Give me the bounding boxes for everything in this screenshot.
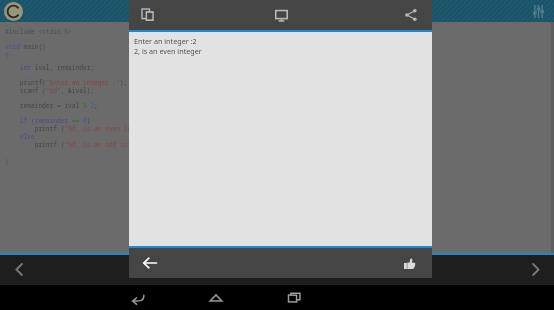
staticText: else (5, 132, 35, 140)
staticText: printf ("%d, is an odd integer", ival); (5, 140, 180, 148)
staticText: void main() (5, 42, 46, 50)
button[interactable]: Previous (6, 256, 32, 282)
staticText: remainder = ival % 2; (5, 101, 98, 109)
staticText: scanf ("%d", &ival); (5, 86, 95, 94)
button[interactable]: Settings (528, 1, 548, 21)
button[interactable]: Copy output (135, 2, 161, 28)
button[interactable]: Display output (268, 2, 294, 28)
button[interactable]: Share (398, 2, 424, 28)
staticText: Enter an integer :2 (134, 36, 197, 46)
button[interactable]: Recent apps (276, 285, 312, 310)
button[interactable]: Next (522, 256, 548, 282)
staticText: printf("Enter an integer :"); (5, 78, 128, 86)
staticText: int ival, remainder; (5, 63, 95, 71)
button[interactable]: C compiler app icon (4, 2, 23, 21)
button[interactable]: Like (396, 250, 422, 276)
button[interactable]: Back (120, 285, 156, 310)
staticText: #include <stdio.h> (5, 27, 72, 35)
staticText: printf ("%d, is an even integer", ival); (5, 124, 184, 132)
button[interactable]: Home (198, 285, 234, 310)
staticText: if (remainder == 0) (5, 116, 91, 124)
button[interactable]: Back (137, 250, 163, 276)
staticText: } (5, 157, 9, 165)
staticText: { (5, 50, 9, 58)
staticText: 2, is an even integer (134, 46, 202, 56)
